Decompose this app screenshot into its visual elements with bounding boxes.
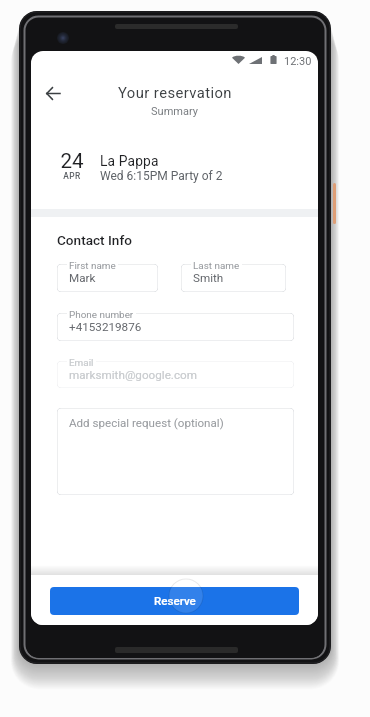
staticText: Wed 6:15PM Party of 2 — [100, 169, 223, 183]
button[interactable]: Back — [39, 79, 67, 107]
staticText: Last name — [193, 260, 240, 272]
staticText: Your reservation — [118, 84, 232, 101]
staticText: Smith — [193, 271, 224, 285]
staticText: Summary — [151, 105, 198, 118]
button[interactable]: 24 — [31, 144, 318, 206]
button[interactable] — [57, 408, 294, 495]
staticText: Phone number — [69, 309, 134, 321]
button[interactable] — [57, 313, 294, 341]
button[interactable] — [57, 264, 158, 292]
staticText: 12:30 — [284, 55, 312, 68]
staticText: Email — [69, 357, 94, 369]
button[interactable] — [57, 361, 294, 388]
staticText: +4153219876 — [69, 320, 142, 334]
staticText: APR — [63, 171, 81, 181]
staticText: Reserve — [154, 594, 196, 608]
staticText: First name — [69, 260, 116, 272]
button[interactable]: Reserve — [50, 587, 299, 615]
staticText: Mark — [69, 271, 96, 285]
staticText: Contact Info — [57, 232, 132, 248]
staticText: Add special request (optional) — [69, 416, 224, 430]
staticText: La Pappa — [100, 153, 159, 169]
staticText: marksmith@google.com — [69, 368, 197, 382]
button[interactable] — [181, 264, 286, 292]
staticText: 24 — [60, 149, 84, 173]
